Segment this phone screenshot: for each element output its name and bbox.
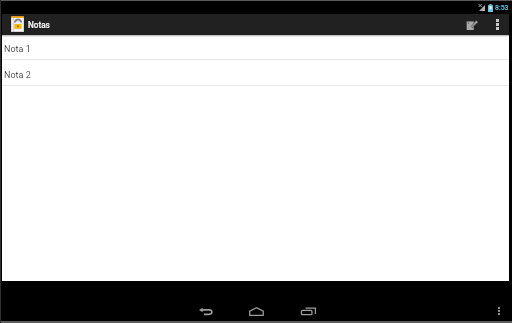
button[interactable]: Nota 2 [2, 60, 509, 86]
button[interactable]: Nota 1 [2, 35, 509, 60]
button[interactable]: Home [240, 302, 272, 320]
staticText: Nota 1 [4, 44, 31, 55]
button[interactable]: Recent apps [292, 302, 324, 320]
button[interactable]: Menu [492, 304, 506, 318]
button[interactable]: New note [460, 14, 482, 35]
staticText: Notas [28, 20, 50, 30]
button[interactable]: Back [190, 302, 222, 320]
staticText: 8:53 [495, 4, 509, 12]
staticText: Nota 2 [4, 70, 31, 81]
button[interactable]: Notas [2, 14, 62, 35]
button[interactable]: More options [487, 14, 508, 35]
